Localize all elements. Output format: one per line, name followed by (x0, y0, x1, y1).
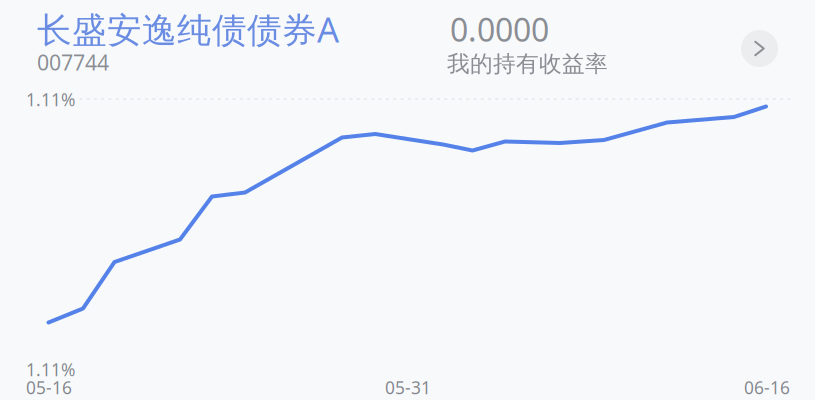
button[interactable]: 长盛安逸纯债债券A 007744 我的持有收益率 0.0000 (0, 0, 815, 90)
staticText: 我的持有收益率 (447, 50, 608, 78)
staticText: 1.11% (26, 88, 75, 111)
staticText: 007744 (37, 48, 109, 76)
staticText: 1.11% (26, 358, 75, 381)
staticText: 长盛安逸纯债债券A (37, 6, 339, 52)
staticText: 05-16 (26, 376, 72, 399)
staticText: 05-31 (385, 376, 431, 399)
staticText: 06-16 (744, 376, 790, 399)
staticText: 0.0000 (450, 8, 549, 50)
